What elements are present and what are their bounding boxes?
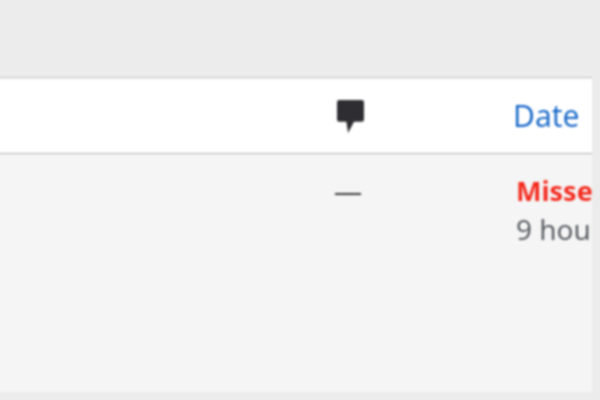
button[interactable]: Messages — [0, 79, 373, 153]
staticText: Date — [513, 95, 580, 136]
button[interactable]: Missed call — [0, 154, 592, 250]
staticText: 9 hours ago — [516, 210, 600, 248]
staticText: Missed call — [516, 172, 600, 209]
